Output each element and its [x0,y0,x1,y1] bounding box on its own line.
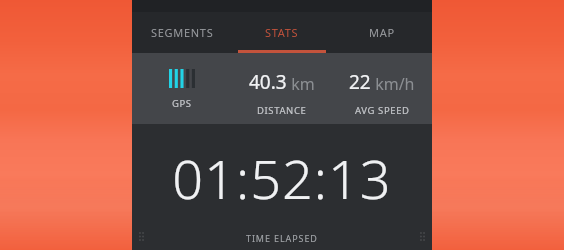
staticText: 01:52:13 [172,141,392,215]
button[interactable]: 22 [332,53,432,124]
staticText: TIME ELAPSED [246,232,318,244]
button[interactable]: 40.3 [232,53,332,124]
staticText: km [287,73,315,95]
staticText: km/h [371,73,415,95]
staticText: SEGMENTS [151,25,214,40]
button[interactable]: STATS [232,12,332,53]
staticText: 40.3 [249,69,287,95]
button[interactable]: MAP [332,12,432,53]
staticText: 22 [349,69,371,95]
staticText: MAP [369,25,395,40]
staticText: DISTANCE [257,104,307,117]
staticText: GPS [172,97,192,110]
button[interactable]: SEGMENTS [132,12,232,53]
staticText: STATS [265,25,299,40]
staticText: AVG SPEED [355,104,410,117]
button[interactable]: GPS signal strength [132,53,232,124]
other: GPS signal strength [169,69,195,88]
